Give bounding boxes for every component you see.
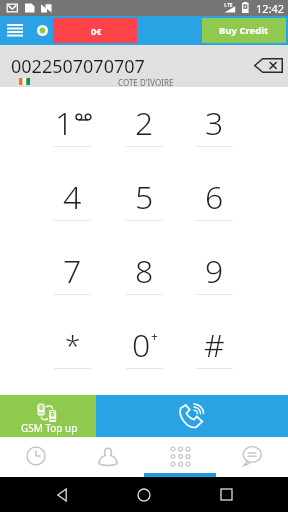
- button[interactable]: Backspace: [247, 51, 287, 81]
- staticText: 2: [135, 101, 154, 145]
- button[interactable]: GSM Top up: [0, 395, 96, 437]
- button[interactable]: Dialpad: [144, 437, 216, 477]
- button[interactable]: Status: [31, 16, 53, 45]
- staticText: 5: [135, 175, 154, 219]
- button[interactable]: Recents: [206, 477, 246, 512]
- button[interactable]: 6: [179, 160, 250, 234]
- staticText: GSM Top up: [21, 421, 78, 435]
- staticText: 6: [205, 175, 224, 219]
- button[interactable]: Call: [96, 395, 288, 437]
- staticText: 3: [205, 101, 224, 145]
- staticText: 9: [205, 249, 224, 293]
- button[interactable]: *: [37, 308, 108, 382]
- button[interactable]: 9: [179, 234, 250, 308]
- button[interactable]: 7: [37, 234, 108, 308]
- staticText: 0022507070707: [11, 54, 145, 79]
- button[interactable]: 3: [179, 86, 250, 160]
- staticText: COTE D'IVOIRE: [118, 77, 174, 88]
- staticText: 7: [63, 249, 82, 293]
- button[interactable]: Menu: [0, 16, 30, 45]
- staticText: 0: [132, 323, 151, 367]
- staticText: #: [204, 323, 225, 367]
- staticText: *: [65, 326, 81, 364]
- button[interactable]: 0€: [53, 18, 137, 43]
- button[interactable]: 5: [109, 160, 180, 234]
- button[interactable]: 1: [37, 86, 108, 160]
- staticText: 0€: [91, 25, 102, 37]
- button[interactable]: Home: [124, 477, 164, 512]
- button[interactable]: Buy Credit: [202, 18, 286, 43]
- staticText: 8: [135, 249, 154, 293]
- button[interactable]: Contacts: [72, 437, 144, 477]
- staticText: Buy Credit: [219, 24, 269, 37]
- button[interactable]: Recents: [0, 437, 72, 477]
- button[interactable]: #: [179, 308, 250, 382]
- button[interactable]: 4: [37, 160, 108, 234]
- button[interactable]: 0: [109, 308, 180, 382]
- staticText: 1: [55, 101, 74, 145]
- button[interactable]: Messages: [216, 437, 288, 477]
- button[interactable]: Back: [42, 477, 82, 512]
- button[interactable]: 2: [109, 86, 180, 160]
- button[interactable]: 8: [109, 234, 180, 308]
- staticText: 12:42: [256, 1, 285, 16]
- staticText: +: [151, 328, 158, 344]
- staticText: 4: [63, 175, 82, 219]
